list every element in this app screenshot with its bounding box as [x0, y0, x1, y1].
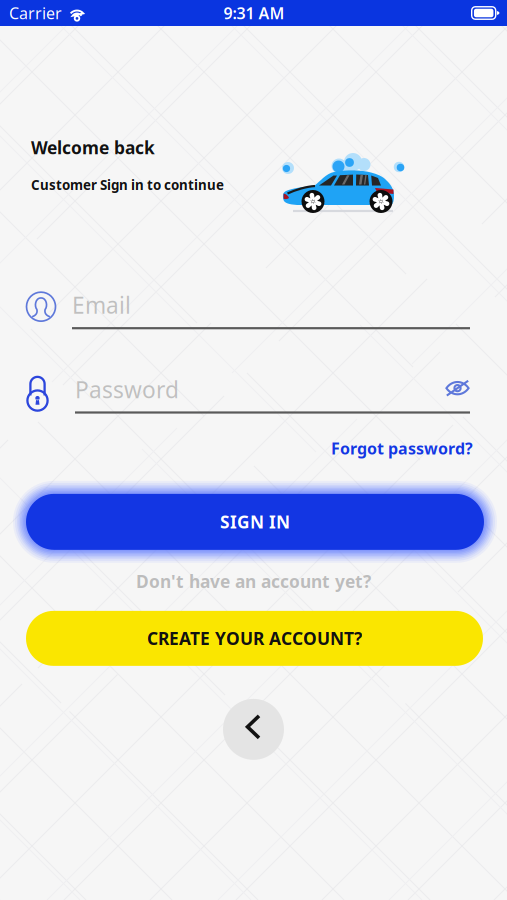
button[interactable]: SIGN IN	[26, 494, 484, 550]
staticText: Password	[75, 374, 179, 404]
button[interactable]: Forgot password?	[331, 438, 473, 459]
button[interactable]: Show password	[445, 379, 470, 399]
staticText: Email	[72, 290, 131, 320]
staticText: Welcome back	[31, 136, 155, 159]
staticText: Forgot password?	[331, 438, 473, 459]
staticText: 9:31 AM	[223, 2, 284, 24]
staticText: Carrier	[9, 2, 62, 24]
button[interactable]: Back	[223, 699, 284, 760]
button[interactable]: CREATE YOUR ACCOUNT?	[26, 611, 483, 666]
staticText: CREATE YOUR ACCOUNT?	[147, 627, 362, 650]
staticText: Don't have an account yet?	[136, 570, 371, 593]
staticText: SIGN IN	[220, 510, 290, 533]
staticText: Customer Sign in to continue	[31, 176, 224, 194]
